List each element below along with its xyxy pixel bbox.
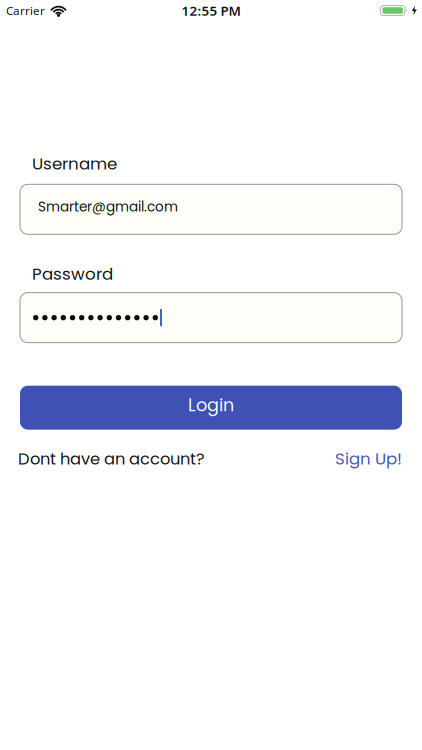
staticText: Login [188,393,234,417]
button[interactable]: Sign Up! [335,447,402,470]
button[interactable]: Login [20,386,402,430]
staticText: Smarter@gmail.com [38,197,178,216]
button[interactable] [20,293,402,343]
staticText: Sign Up! [335,447,402,470]
staticText: Username [32,152,117,175]
staticText: Dont have an account? [18,447,205,470]
staticText: 12:55 PM [181,2,240,19]
staticText: Password [32,262,113,286]
staticText: Carrier [6,3,45,18]
button[interactable]: Smarter@gmail.com [20,184,402,234]
